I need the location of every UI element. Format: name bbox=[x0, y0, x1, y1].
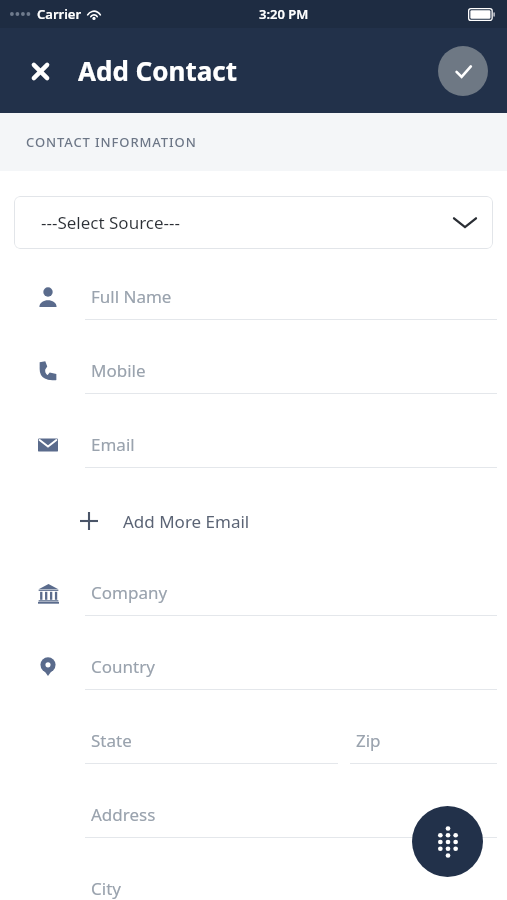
staticText: Add More Email bbox=[123, 510, 250, 533]
staticText: City bbox=[91, 877, 121, 900]
staticText: Country bbox=[91, 655, 155, 678]
button[interactable]: Save bbox=[438, 46, 488, 96]
staticText: Address bbox=[91, 803, 156, 826]
staticText: Company bbox=[91, 581, 168, 604]
staticText: Zip bbox=[356, 729, 381, 752]
staticText: Mobile bbox=[91, 359, 146, 382]
button[interactable]: Close bbox=[22, 53, 58, 89]
staticText: ---Select Source--- bbox=[41, 211, 181, 234]
button[interactable]: City bbox=[0, 863, 507, 900]
staticText: State bbox=[91, 729, 132, 752]
button[interactable]: Country bbox=[0, 641, 507, 715]
button[interactable]: Company bbox=[0, 567, 507, 641]
staticText: Carrier bbox=[37, 5, 82, 23]
button[interactable]: State bbox=[85, 715, 338, 775]
staticText: CONTACT INFORMATION bbox=[26, 133, 197, 151]
button[interactable]: Zip bbox=[350, 715, 497, 775]
button[interactable]: Full Name bbox=[0, 271, 507, 345]
button[interactable]: Mobile bbox=[0, 345, 507, 419]
button[interactable]: ---Select Source--- bbox=[14, 196, 493, 249]
button[interactable]: Email bbox=[0, 419, 507, 493]
staticText: Full Name bbox=[91, 285, 172, 308]
staticText: Email bbox=[91, 433, 135, 456]
button[interactable]: Address bbox=[0, 789, 507, 863]
button[interactable]: Dial pad bbox=[412, 806, 483, 877]
staticText: 3:20 PM bbox=[259, 5, 309, 23]
staticText: Add Contact bbox=[78, 53, 238, 88]
button[interactable]: Add More Email bbox=[80, 499, 250, 543]
